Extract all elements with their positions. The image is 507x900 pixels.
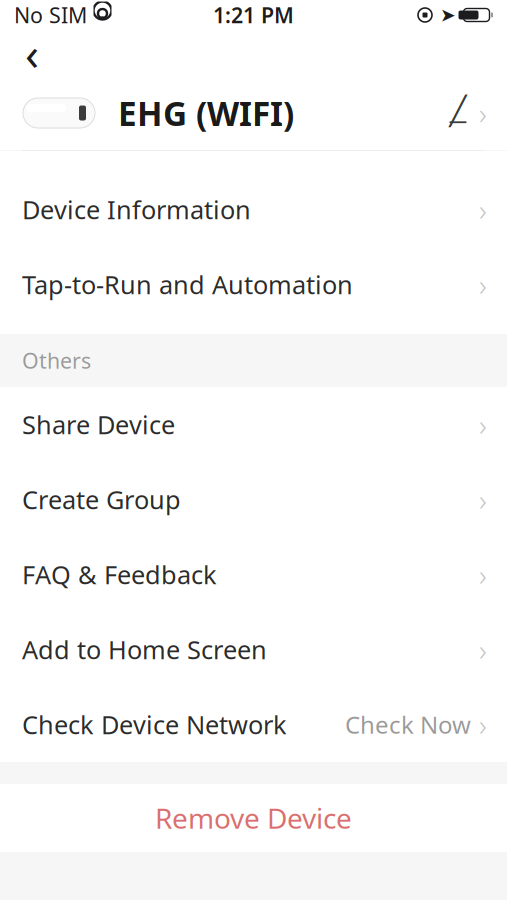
staticText: › bbox=[479, 480, 487, 519]
button[interactable]: Share Device bbox=[0, 387, 507, 462]
button[interactable]: Tap-to-Run and Automation bbox=[0, 247, 507, 322]
staticText: ╱ bbox=[449, 95, 466, 127]
staticText: Create Group bbox=[22, 483, 181, 516]
button[interactable]: Check Device Network bbox=[0, 687, 507, 762]
staticText: ‹ bbox=[25, 23, 39, 83]
button[interactable]: Back bbox=[10, 31, 54, 75]
staticText: 1:21 PM bbox=[213, 1, 294, 29]
staticText: › bbox=[479, 405, 487, 444]
staticText: Check Now bbox=[345, 709, 471, 740]
staticText: › bbox=[479, 265, 487, 304]
staticText: › bbox=[479, 705, 487, 744]
staticText: › bbox=[479, 630, 487, 669]
staticText: Remove Device bbox=[155, 799, 352, 837]
button[interactable]: EHG (WIFI) bbox=[0, 76, 507, 150]
staticText: Others bbox=[22, 346, 91, 375]
button[interactable]: Device Information bbox=[0, 172, 507, 247]
staticText: No SIM bbox=[14, 1, 87, 29]
staticText: › bbox=[479, 190, 487, 229]
button[interactable]: FAQ & Feedback bbox=[0, 537, 507, 612]
button[interactable]: Remove Device bbox=[0, 784, 507, 852]
button[interactable]: Create Group bbox=[0, 462, 507, 537]
staticText: EHG (WIFI) bbox=[118, 91, 294, 135]
staticText: › bbox=[479, 93, 487, 132]
staticText: Share Device bbox=[22, 408, 175, 441]
staticText: FAQ & Feedback bbox=[22, 558, 217, 591]
staticText: ➤ bbox=[440, 4, 456, 26]
button[interactable]: Add to Home Screen bbox=[0, 612, 507, 687]
staticText: Tap-to-Run and Automation bbox=[22, 268, 353, 301]
staticText: Add to Home Screen bbox=[22, 633, 267, 666]
staticText: › bbox=[479, 555, 487, 594]
staticText: Check Device Network bbox=[22, 708, 287, 741]
staticText: Device Information bbox=[22, 193, 251, 226]
